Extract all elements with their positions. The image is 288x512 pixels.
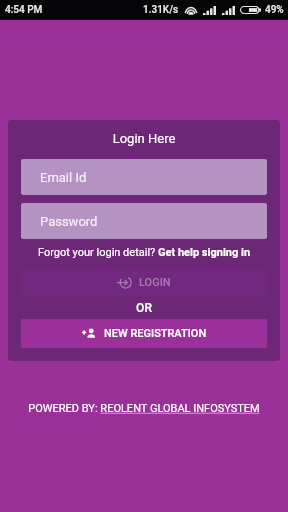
staticText: Email Id (40, 170, 87, 185)
button[interactable]: Email Id (21, 159, 267, 195)
button[interactable]: NEW REGISTRATION (21, 319, 267, 348)
staticText: LOGIN (139, 276, 171, 289)
staticText: 1.31K/s (143, 4, 179, 16)
staticText: NEW REGISTRATION (104, 327, 207, 340)
staticText: Password (40, 214, 98, 229)
staticText: OR (21, 301, 267, 315)
staticText: 4:54 PM (5, 4, 43, 16)
button[interactable]: Forgot your login detail? Get help signi… (21, 246, 267, 259)
button[interactable]: Password (21, 203, 267, 239)
staticText: 49% (265, 4, 284, 16)
staticText: Login Here (21, 131, 267, 146)
button[interactable]: POWERED BY: REOLENT GLOBAL INFOSYSTEM (0, 402, 288, 415)
button[interactable]: LOGIN (21, 269, 267, 296)
